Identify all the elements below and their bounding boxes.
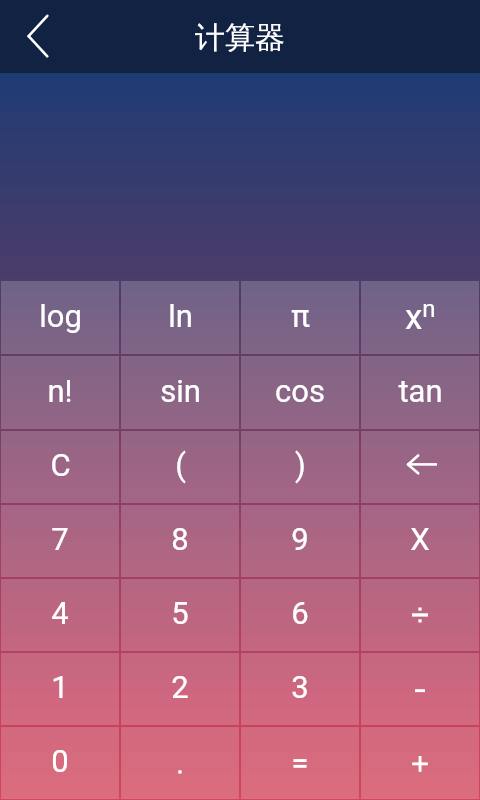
staticText: ln xyxy=(168,298,193,334)
staticText: 8 xyxy=(171,521,189,557)
button[interactable]: xn xyxy=(361,281,479,354)
staticText: 计算器 xyxy=(195,19,285,57)
button[interactable]: 7 xyxy=(1,505,119,577)
button[interactable]: ( xyxy=(121,431,239,503)
button[interactable]: cos xyxy=(241,356,359,429)
staticText: ( xyxy=(175,447,186,483)
staticText: tan xyxy=(398,373,443,409)
staticText: 3 xyxy=(291,669,309,705)
staticText: 5 xyxy=(171,595,189,631)
button[interactable]: Back xyxy=(0,0,72,73)
button[interactable]: Plus xyxy=(361,727,479,799)
button[interactable]: Decimal point xyxy=(121,727,239,799)
staticText: X xyxy=(410,521,430,557)
button[interactable]: 9 xyxy=(241,505,359,577)
button[interactable]: log xyxy=(1,281,119,354)
button[interactable]: n! xyxy=(1,356,119,429)
staticText: xn xyxy=(405,295,436,337)
staticText: cos xyxy=(275,373,325,409)
staticText: log xyxy=(39,298,82,334)
staticText: 7 xyxy=(51,521,69,557)
staticText: ) xyxy=(295,447,306,483)
button[interactable]: ln xyxy=(121,281,239,354)
staticText: 9 xyxy=(291,521,309,557)
button[interactable]: Backspace xyxy=(361,431,479,503)
button[interactable]: 3 xyxy=(241,653,359,725)
button[interactable]: 1 xyxy=(1,653,119,725)
button[interactable]: sin xyxy=(121,356,239,429)
staticText: n! xyxy=(47,373,73,409)
button[interactable]: X xyxy=(361,505,479,577)
button[interactable]: π xyxy=(241,281,359,354)
button[interactable]: 2 xyxy=(121,653,239,725)
staticText: 1 xyxy=(51,669,69,705)
button[interactable]: 8 xyxy=(121,505,239,577)
staticText: sin xyxy=(160,373,201,409)
button[interactable]: 5 xyxy=(121,579,239,651)
staticText: π xyxy=(291,298,310,334)
button[interactable]: Minus xyxy=(361,653,479,725)
staticText: 2 xyxy=(171,669,189,705)
staticText: 0 xyxy=(51,743,69,779)
button[interactable]: ) xyxy=(241,431,359,503)
button[interactable]: Divide xyxy=(361,579,479,651)
staticText: 6 xyxy=(291,595,309,631)
button[interactable]: 4 xyxy=(1,579,119,651)
button[interactable]: tan xyxy=(361,356,479,429)
button[interactable]: Equals xyxy=(241,727,359,799)
staticText: 4 xyxy=(51,595,69,631)
button[interactable]: 6 xyxy=(241,579,359,651)
button[interactable]: C xyxy=(1,431,119,503)
staticText: C xyxy=(50,447,71,483)
button[interactable]: 0 xyxy=(1,727,119,799)
